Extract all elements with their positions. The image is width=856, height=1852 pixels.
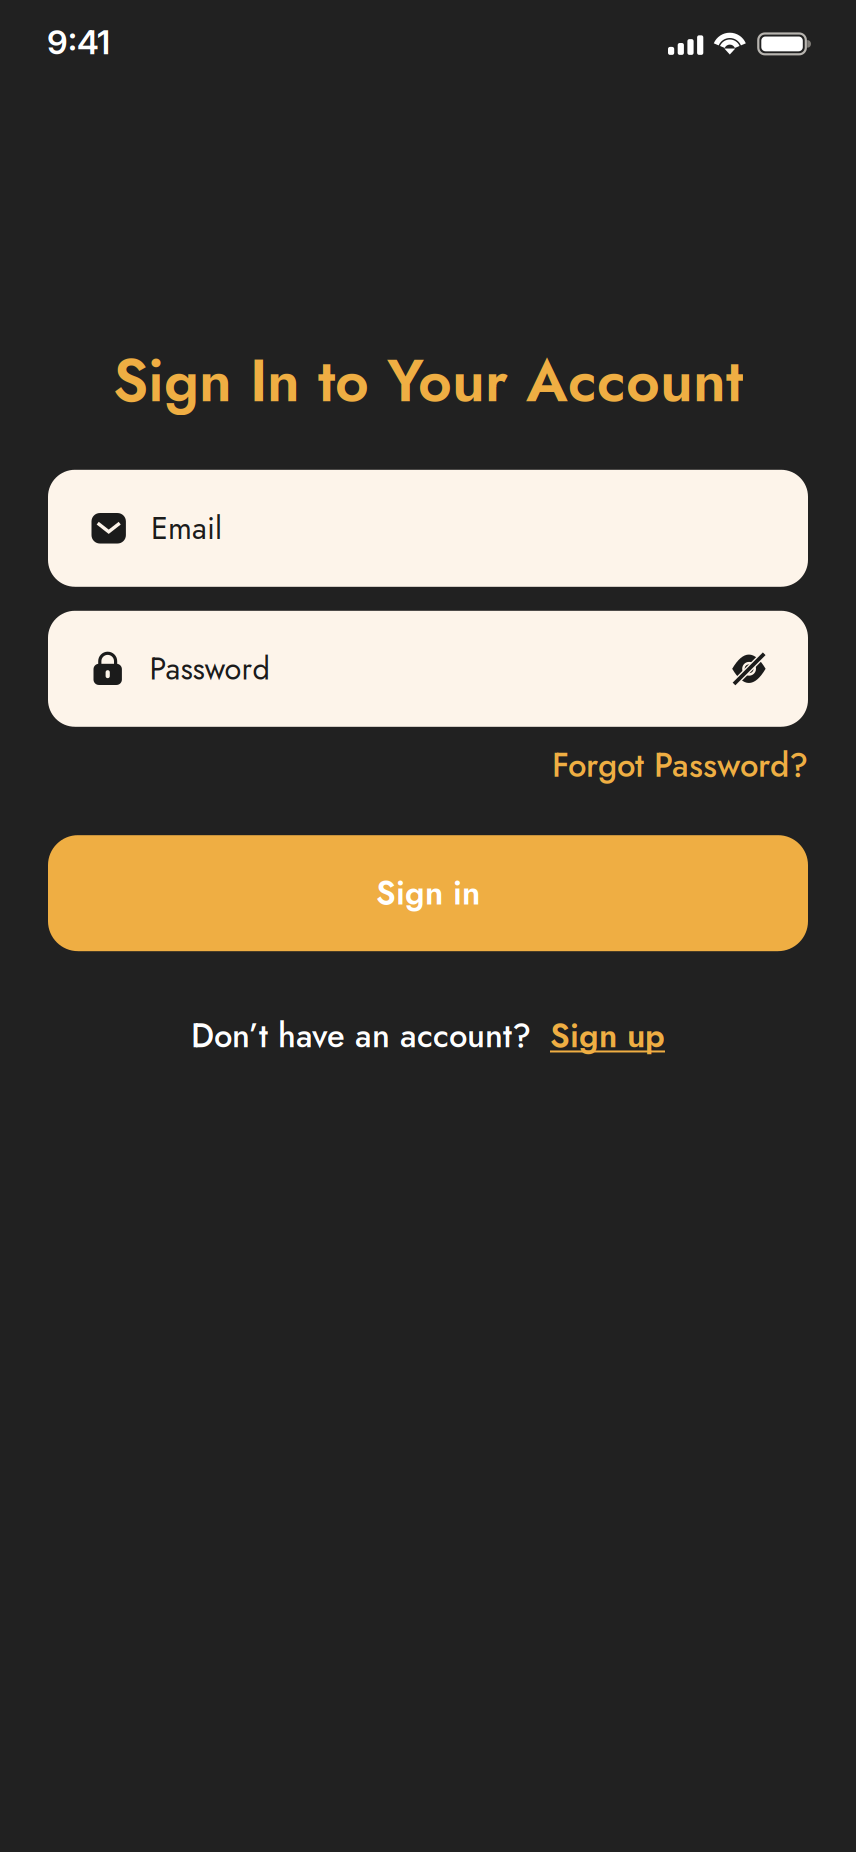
button[interactable]: Show password	[732, 652, 766, 686]
staticText: Sign up	[550, 1012, 665, 1059]
staticText: Password	[149, 647, 269, 691]
staticText: 9:41	[47, 22, 110, 62]
button[interactable]: Sign in	[48, 835, 808, 951]
staticText: Email	[151, 506, 222, 550]
staticText: Sign in	[376, 869, 480, 917]
button[interactable]: Forgot Password?	[552, 742, 808, 789]
staticText: Sign In to Your Account	[113, 338, 743, 423]
staticText: Don’t have an account?	[191, 1012, 531, 1059]
staticText: Forgot Password?	[552, 742, 808, 789]
button[interactable]: Sign up	[550, 1012, 665, 1059]
